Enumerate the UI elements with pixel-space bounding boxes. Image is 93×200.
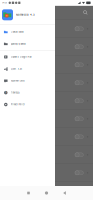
- staticText: Браузер файлов: [11, 42, 26, 45]
- button[interactable]: Статус: [0, 92, 93, 110]
- staticText: Помощь: [11, 91, 20, 94]
- button[interactable]: Режим: [0, 20, 93, 38]
- staticText: 14:51: [2, 1, 7, 4]
- button[interactable]: Скрыть: [0, 56, 93, 74]
- staticText: Android: [4, 80, 11, 83]
- button[interactable]: обратная связь: [0, 75, 55, 87]
- button[interactable]: Список папок: [0, 26, 55, 38]
- button[interactable]: Privacy Policy: [0, 99, 55, 110]
- staticText: Nomedia 4.3: [16, 13, 35, 16]
- button[interactable]: Back: [55, 186, 73, 200]
- button[interactable]: Оцени в Google Play: [0, 51, 55, 63]
- button[interactable]: Recent apps: [19, 186, 37, 200]
- staticText: Автоматически: [4, 29, 17, 31]
- button[interactable]: Search: [80, 6, 90, 20]
- staticText: обратная связь: [11, 79, 25, 82]
- button[interactable]: Тема: [0, 128, 93, 146]
- button[interactable]: Android: [0, 74, 93, 92]
- staticText: Доля .KZB: [11, 67, 22, 70]
- button[interactable]: Доля .KZB: [0, 63, 55, 75]
- staticText: Список папок: [11, 31, 24, 33]
- staticText: SD Card: [4, 44, 13, 47]
- button[interactable]: Язык: [0, 164, 93, 182]
- button[interactable]: Журнал: [0, 110, 93, 128]
- staticText: Включено: [4, 101, 13, 103]
- staticText: Privacy Policy: [11, 103, 25, 106]
- staticText: ?: [5, 91, 6, 94]
- button[interactable]: SD Card: [0, 38, 93, 56]
- staticText: Оцени в Google Play: [11, 56, 32, 58]
- button[interactable]: Home: [37, 186, 55, 200]
- button[interactable]: SD Card: [0, 146, 93, 164]
- button[interactable]: ?: [0, 87, 55, 99]
- button[interactable]: Браузер файлов: [0, 38, 55, 50]
